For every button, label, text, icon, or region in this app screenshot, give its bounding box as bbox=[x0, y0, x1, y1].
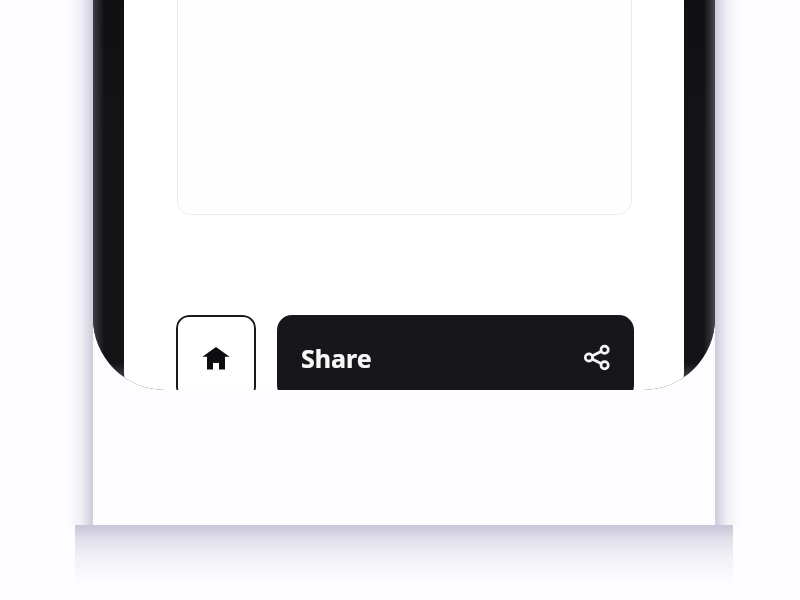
staticText: Share bbox=[301, 341, 372, 375]
button[interactable]: Share bbox=[277, 315, 634, 390]
button[interactable]: Home bbox=[176, 315, 256, 390]
